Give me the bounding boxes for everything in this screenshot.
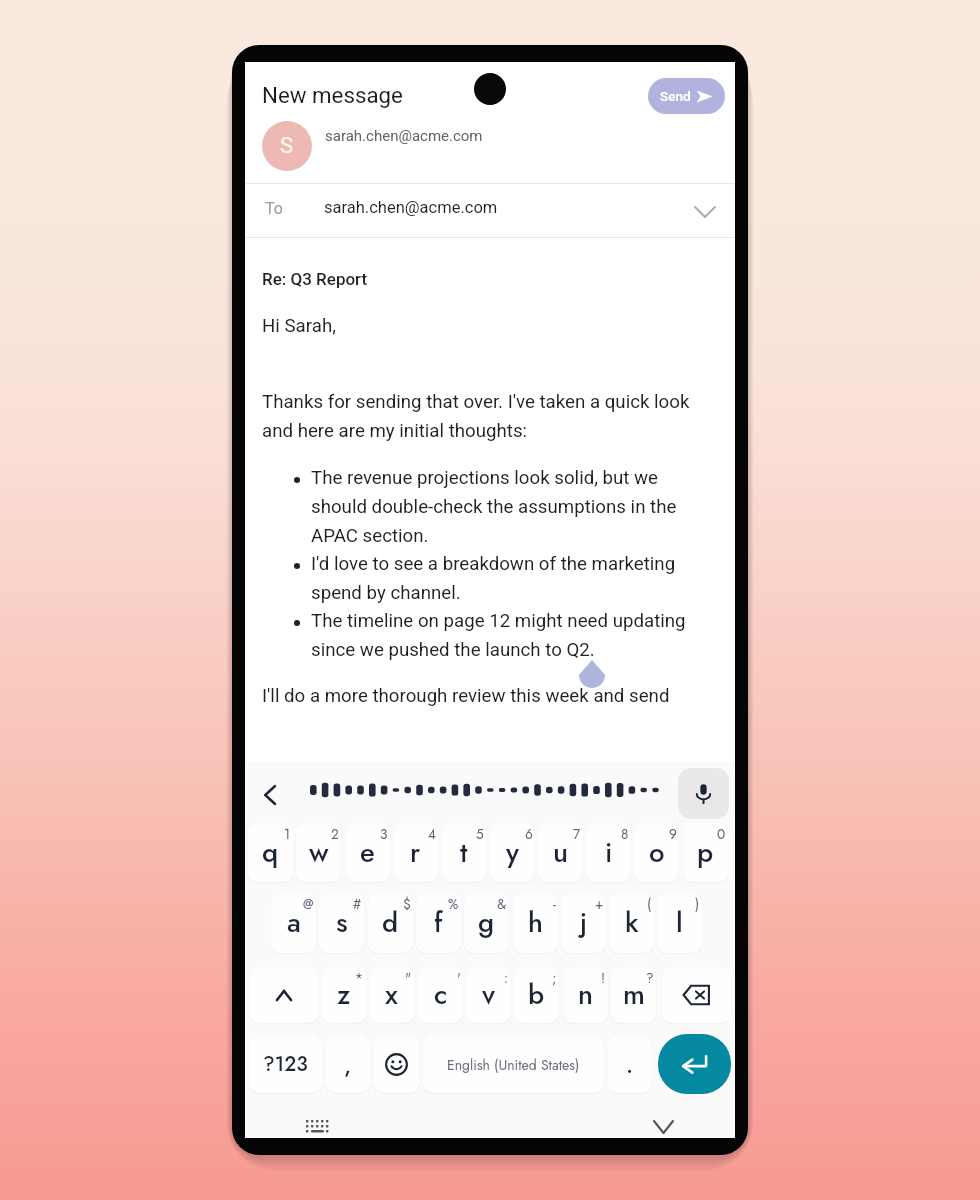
- staticText: ": [405, 968, 412, 988]
- button[interactable]: n: [563, 967, 608, 1023]
- staticText: 3: [380, 824, 388, 844]
- staticText: b: [528, 975, 545, 1015]
- staticText: Hi Sarah,: [262, 315, 336, 337]
- staticText: v: [482, 975, 496, 1015]
- staticText: s: [336, 903, 348, 943]
- button[interactable]: English (United States): [423, 1036, 604, 1093]
- button[interactable]: Backspace: [662, 967, 731, 1023]
- staticText: 0: [717, 824, 726, 844]
- button[interactable]: x: [369, 967, 414, 1023]
- other: Change keyboard: [306, 1120, 328, 1133]
- button[interactable]: q: [248, 823, 293, 882]
- button[interactable]: c: [418, 967, 463, 1023]
- staticText: c: [434, 975, 448, 1015]
- button[interactable]: g: [464, 893, 509, 953]
- staticText: Re: Q3 Report: [262, 269, 368, 289]
- button[interactable]: m: [611, 967, 656, 1023]
- staticText: w: [309, 833, 329, 873]
- button[interactable]: z: [321, 967, 366, 1023]
- staticText: p: [697, 833, 714, 873]
- staticText: sarah.chen@acme.com: [324, 198, 498, 217]
- staticText: ): [695, 894, 700, 914]
- button[interactable]: Send: [648, 78, 725, 114]
- button[interactable]: v: [466, 967, 511, 1023]
- button[interactable]: k: [609, 893, 654, 953]
- staticText: 7: [573, 824, 581, 844]
- button[interactable]: Account: [262, 121, 312, 171]
- staticText: o: [649, 833, 665, 873]
- staticText: ,: [344, 1048, 352, 1081]
- staticText: 9: [669, 824, 677, 844]
- staticText: 4: [428, 824, 436, 844]
- staticText: -: [553, 894, 556, 914]
- button[interactable]: Enter: [658, 1034, 731, 1094]
- button[interactable]: b: [514, 967, 559, 1023]
- staticText: z: [337, 975, 351, 1015]
- staticText: Send: [660, 88, 691, 104]
- staticText: :: [504, 968, 509, 988]
- button[interactable]: i: [586, 823, 631, 882]
- staticText: g: [478, 903, 495, 943]
- button[interactable]: f: [416, 893, 461, 953]
- button[interactable]: Voice input: [678, 768, 729, 819]
- staticText: &: [497, 894, 507, 914]
- button[interactable]: ?123: [249, 1036, 322, 1093]
- staticText: +: [595, 894, 604, 914]
- button[interactable]: s: [319, 893, 364, 953]
- staticText: Thanks for sending that over. I've taken…: [262, 391, 690, 441]
- staticText: sarah.chen@acme.com: [325, 127, 483, 145]
- staticText: ?123: [263, 1050, 308, 1079]
- staticText: To: [265, 199, 283, 218]
- other: Back: [264, 786, 277, 804]
- staticText: x: [385, 975, 398, 1015]
- staticText: $: [403, 894, 411, 914]
- staticText: ;: [552, 968, 557, 988]
- button[interactable]: ,: [326, 1036, 370, 1093]
- staticText: n: [578, 975, 593, 1015]
- staticText: #: [353, 894, 362, 914]
- button[interactable]: u: [538, 823, 583, 882]
- staticText: a: [287, 903, 301, 943]
- staticText: I'd love to see a breakdown of the marke…: [311, 553, 701, 603]
- staticText: 2: [331, 824, 339, 844]
- button[interactable]: d: [368, 893, 413, 953]
- staticText: The revenue projections look solid, but …: [311, 467, 701, 546]
- staticText: I'll do a more thorough review this week…: [262, 685, 670, 707]
- staticText: %: [448, 894, 459, 914]
- button[interactable]: j: [561, 893, 606, 953]
- staticText: ': [457, 968, 461, 988]
- staticText: u: [553, 833, 568, 873]
- staticText: f: [434, 903, 443, 943]
- staticText: (: [647, 894, 652, 914]
- staticText: S: [280, 133, 294, 159]
- staticText: k: [625, 903, 639, 943]
- other: Expand recipients: [695, 207, 715, 217]
- button[interactable]: To: [245, 184, 735, 237]
- button[interactable]: y: [490, 823, 535, 882]
- button[interactable]: w: [296, 823, 341, 882]
- button[interactable]: l: [657, 893, 702, 953]
- staticText: *: [355, 968, 364, 988]
- staticText: d: [382, 903, 399, 943]
- staticText: e: [360, 833, 375, 873]
- staticText: The timeline on page 12 might need updat…: [311, 610, 701, 660]
- other: Hide keyboard: [654, 1121, 673, 1133]
- staticText: .: [626, 1048, 634, 1081]
- button[interactable]: a: [271, 893, 316, 953]
- staticText: 8: [621, 824, 629, 844]
- button[interactable]: .: [608, 1036, 652, 1093]
- button[interactable]: o: [634, 823, 679, 882]
- button[interactable]: h: [513, 893, 558, 953]
- staticText: r: [410, 833, 421, 873]
- button[interactable]: r: [393, 823, 438, 882]
- staticText: English (United States): [447, 1055, 580, 1075]
- staticText: @: [303, 894, 314, 914]
- button[interactable]: Emoji: [374, 1036, 419, 1093]
- staticText: !: [601, 968, 606, 988]
- button[interactable]: p: [683, 823, 728, 882]
- staticText: l: [676, 903, 683, 943]
- button[interactable]: t: [441, 823, 486, 882]
- button[interactable]: e: [345, 823, 390, 882]
- button[interactable]: Shift: [249, 967, 318, 1023]
- staticText: New message: [262, 82, 403, 108]
